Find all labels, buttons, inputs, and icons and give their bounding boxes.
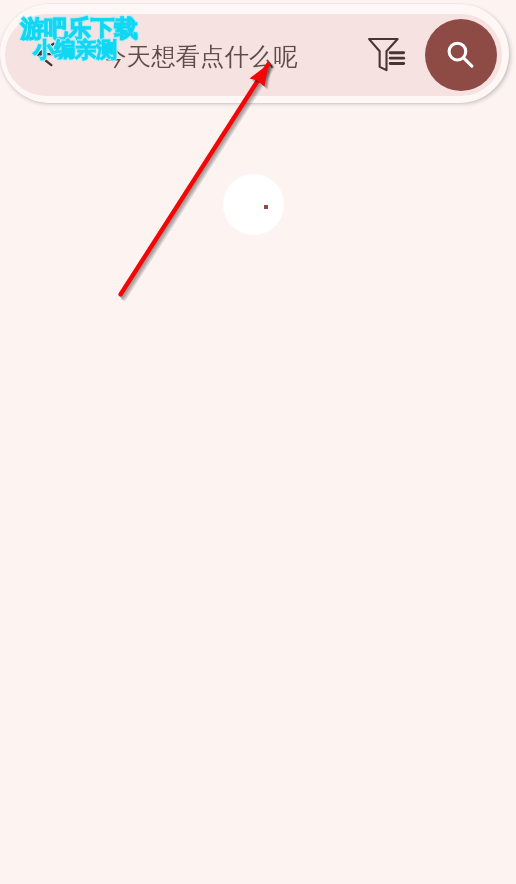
staticText: 小编亲测 xyxy=(32,37,116,63)
staticText: 小编亲测 xyxy=(33,37,117,63)
staticText: 今天想看点什么呢 xyxy=(102,41,298,72)
staticText: 游吧乐下载 xyxy=(20,13,138,43)
button[interactable]: Search xyxy=(425,19,497,91)
staticText: 小编亲测 xyxy=(33,38,117,64)
staticText: 游吧乐下载 xyxy=(19,14,137,44)
staticText: 小编亲测 xyxy=(34,37,118,63)
button[interactable]: Back xyxy=(26,33,70,77)
staticText: 游吧乐下载 xyxy=(20,14,138,44)
staticText: 游吧乐下载 xyxy=(21,14,139,44)
staticText: 游吧乐下载 xyxy=(20,15,138,45)
staticText: 小编亲测 xyxy=(33,36,117,62)
button[interactable]: Filter xyxy=(363,30,409,76)
